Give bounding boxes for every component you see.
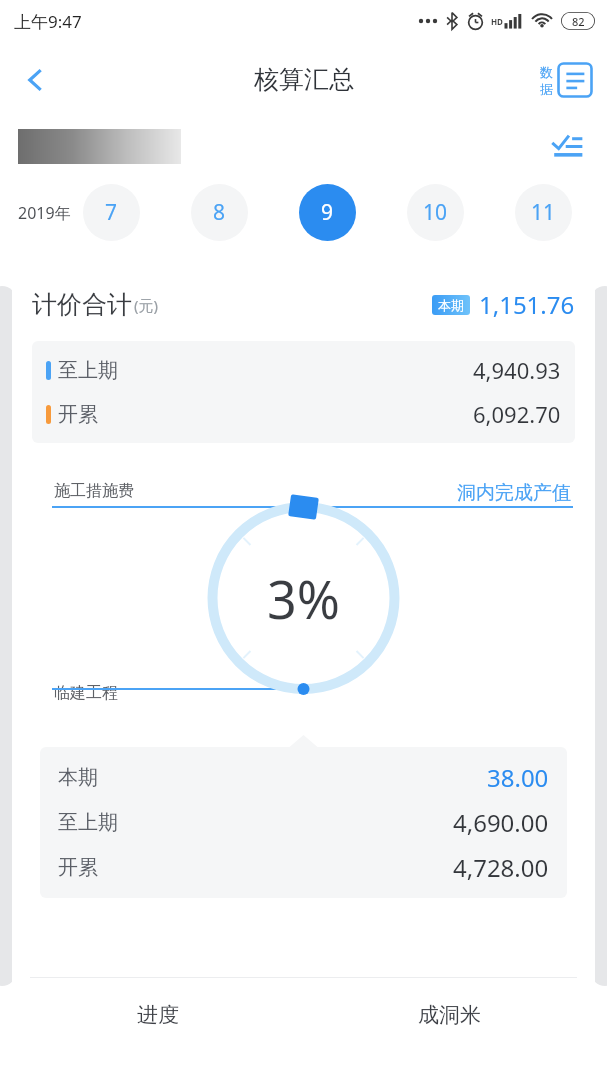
staticText: 洞内完成产值 bbox=[457, 481, 571, 505]
staticText: 数 bbox=[540, 64, 553, 80]
staticText: 进度 bbox=[137, 1002, 179, 1028]
staticText: 4,728.00 bbox=[453, 851, 549, 884]
staticText: 施工措施费 bbox=[54, 481, 134, 501]
staticText: 临建工程 bbox=[54, 683, 118, 703]
staticText: 本期 bbox=[438, 297, 464, 313]
staticText: 11 bbox=[531, 198, 556, 227]
staticText: 82 bbox=[572, 14, 585, 29]
staticText: 3% bbox=[267, 563, 340, 634]
staticText: 6,092.70 bbox=[473, 399, 561, 429]
staticText: 计价合计 bbox=[32, 289, 132, 320]
button[interactable]: 数据 bbox=[540, 62, 593, 98]
button[interactable]: Tasks bbox=[543, 122, 591, 170]
staticText: 8 bbox=[213, 198, 226, 227]
staticText: 核算汇总 bbox=[254, 64, 354, 95]
staticText: 4,690.00 bbox=[453, 806, 549, 839]
staticText: 1,151.76 bbox=[479, 288, 575, 321]
button[interactable]: 9 bbox=[299, 184, 356, 241]
staticText: 2019年 bbox=[18, 202, 71, 224]
button[interactable]: 7 bbox=[83, 184, 140, 241]
staticText: 4,940.93 bbox=[473, 355, 561, 385]
staticText: 开累 bbox=[58, 402, 98, 427]
staticText: 据 bbox=[540, 81, 553, 97]
button[interactable]: 11 bbox=[515, 184, 572, 241]
button[interactable]: 10 bbox=[407, 184, 464, 241]
button[interactable]: Back bbox=[8, 52, 64, 108]
staticText: 9 bbox=[321, 198, 334, 227]
staticText: 成洞米 bbox=[418, 1002, 481, 1028]
staticText: 上午9:47 bbox=[14, 10, 82, 33]
staticText: 10 bbox=[423, 198, 448, 227]
staticText: 开累 bbox=[58, 855, 98, 880]
staticText: 至上期 bbox=[58, 358, 118, 383]
staticText: 7 bbox=[105, 198, 118, 227]
staticText: HD bbox=[491, 16, 503, 27]
staticText: 38.00 bbox=[487, 761, 549, 794]
button[interactable]: 成洞米 bbox=[303, 978, 595, 1052]
staticText: 本期 bbox=[58, 765, 98, 790]
button[interactable]: 进度 bbox=[12, 978, 303, 1052]
staticText: 至上期 bbox=[58, 810, 118, 835]
staticText: (元) bbox=[134, 295, 159, 315]
button[interactable]: 8 bbox=[191, 184, 248, 241]
